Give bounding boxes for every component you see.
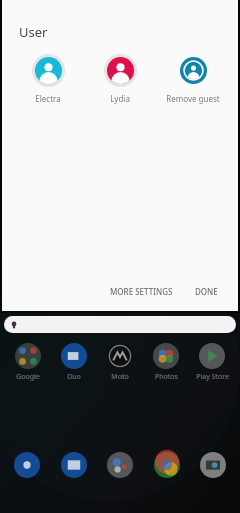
button[interactable]: MORE SETTINGS	[104, 282, 179, 301]
button[interactable]: Play Store	[191, 343, 233, 382]
button[interactable]: Electra	[15, 54, 81, 104]
staticText: Lydia	[110, 93, 130, 104]
staticText: User	[19, 23, 48, 41]
button[interactable]: Google	[7, 343, 49, 382]
staticText: Electra	[35, 93, 61, 104]
staticText: MORE SETTINGS	[110, 286, 173, 297]
staticText: DONE	[195, 286, 218, 297]
button[interactable]: Search	[4, 316, 236, 333]
button[interactable]: Duo	[53, 343, 95, 382]
button[interactable]: DONE	[189, 282, 224, 301]
staticText: Google	[16, 372, 40, 382]
button[interactable]: Photos	[145, 343, 187, 382]
button[interactable]: Camera	[200, 452, 226, 478]
button[interactable]: Phone	[14, 452, 40, 478]
button[interactable]: Moto	[99, 343, 141, 382]
staticText: Remove guest	[166, 93, 220, 104]
staticText: Duo	[67, 372, 81, 382]
button[interactable]: Lydia	[87, 54, 153, 104]
button[interactable]: Assistant	[107, 452, 133, 478]
staticText: Play Store	[196, 372, 229, 382]
button[interactable]: Remove guest	[160, 54, 226, 104]
button[interactable]: Chrome	[154, 452, 180, 478]
staticText: Moto	[111, 372, 129, 382]
staticText: Photos	[155, 372, 178, 382]
button[interactable]: Messages	[61, 452, 87, 478]
